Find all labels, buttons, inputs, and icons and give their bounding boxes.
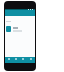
button[interactable]: Tab 2: [12, 57, 19, 63]
button[interactable]: Tab 4: [27, 57, 35, 63]
button[interactable]: Tab 3: [19, 57, 27, 63]
button[interactable]: Tab 1: [5, 57, 12, 63]
button[interactable]: [5, 26, 35, 32]
